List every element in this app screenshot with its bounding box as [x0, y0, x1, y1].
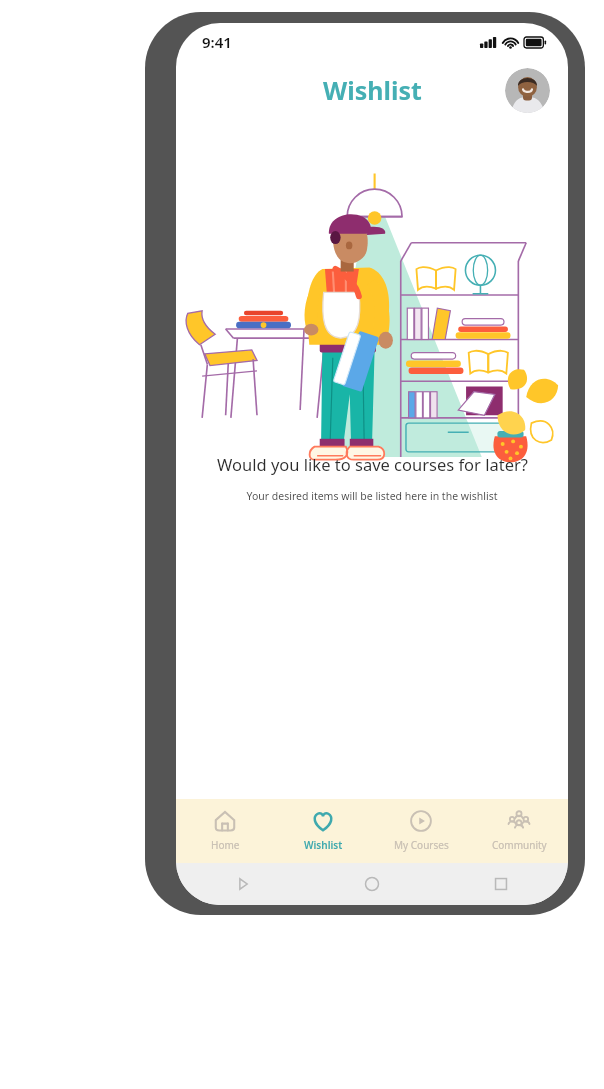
button[interactable]: Home: [359, 871, 385, 897]
staticText: Wishlist: [323, 73, 422, 107]
button[interactable]: Back: [230, 871, 256, 897]
button[interactable]: Home: [176, 799, 274, 863]
staticText: 9:41: [202, 32, 232, 52]
button[interactable]: My Courses: [372, 799, 470, 863]
staticText: Would you like to save courses for later…: [217, 453, 528, 475]
staticText: Community: [492, 838, 547, 852]
button[interactable]: Recent apps: [488, 871, 514, 897]
button[interactable]: Wishlist: [274, 799, 372, 863]
staticText: My Courses: [394, 838, 449, 852]
button[interactable]: Community: [470, 799, 568, 863]
button[interactable]: Profile: [505, 68, 550, 113]
staticText: Wishlist: [304, 838, 343, 852]
staticText: Your desired items will be listed here i…: [246, 489, 498, 503]
staticText: Home: [211, 838, 240, 852]
